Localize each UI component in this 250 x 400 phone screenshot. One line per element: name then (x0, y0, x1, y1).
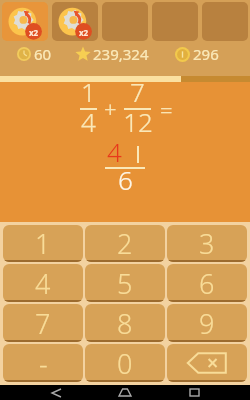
staticText: 1 (35, 225, 51, 262)
button[interactable]: 2 (85, 225, 165, 262)
button[interactable]: 6 (167, 264, 247, 302)
button[interactable]: Power up x2 (52, 2, 98, 41)
staticText: = (160, 94, 173, 124)
staticText: - (39, 345, 48, 382)
staticText: 6 (118, 162, 133, 197)
staticText: 9 (199, 305, 215, 342)
staticText: + (104, 94, 117, 124)
staticText: 8 (117, 305, 133, 342)
button[interactable]: 8 (85, 304, 165, 342)
staticText: 4 (35, 265, 51, 302)
button[interactable]: 3 (167, 225, 247, 262)
staticText: 12 (123, 104, 153, 139)
staticText: 5 (117, 265, 133, 302)
staticText: 4 (107, 134, 122, 169)
button[interactable]: Empty power up slot (102, 2, 148, 41)
staticText: 4 (81, 104, 96, 139)
button[interactable]: Empty power up slot (202, 2, 248, 41)
staticText: 239,324 (93, 44, 149, 64)
staticText: 0 (117, 345, 133, 382)
staticText: 60 (34, 44, 52, 64)
button[interactable]: Backspace (167, 344, 247, 382)
staticText: 1 (81, 74, 96, 109)
staticText: 2 (117, 225, 133, 262)
button[interactable]: Back (43, 385, 69, 400)
staticText: 7 (130, 74, 145, 109)
button[interactable]: Power up x2 (2, 2, 48, 41)
staticText: 296 (193, 44, 219, 64)
staticText: x2 (79, 27, 89, 38)
button[interactable]: 1 (3, 225, 83, 262)
button[interactable]: 7 (3, 304, 83, 342)
button[interactable]: 9 (167, 304, 247, 342)
button[interactable]: 5 (85, 264, 165, 302)
button[interactable]: 4 (3, 264, 83, 302)
button[interactable]: 0 (85, 344, 165, 382)
staticText: x2 (29, 27, 39, 38)
staticText: 6 (199, 265, 215, 302)
button[interactable]: Empty power up slot (152, 2, 198, 41)
button[interactable]: Recents (181, 385, 207, 400)
staticText: 3 (199, 225, 215, 262)
button[interactable]: Home (112, 385, 138, 400)
button[interactable]: - (3, 344, 83, 382)
staticText: 7 (35, 305, 51, 342)
